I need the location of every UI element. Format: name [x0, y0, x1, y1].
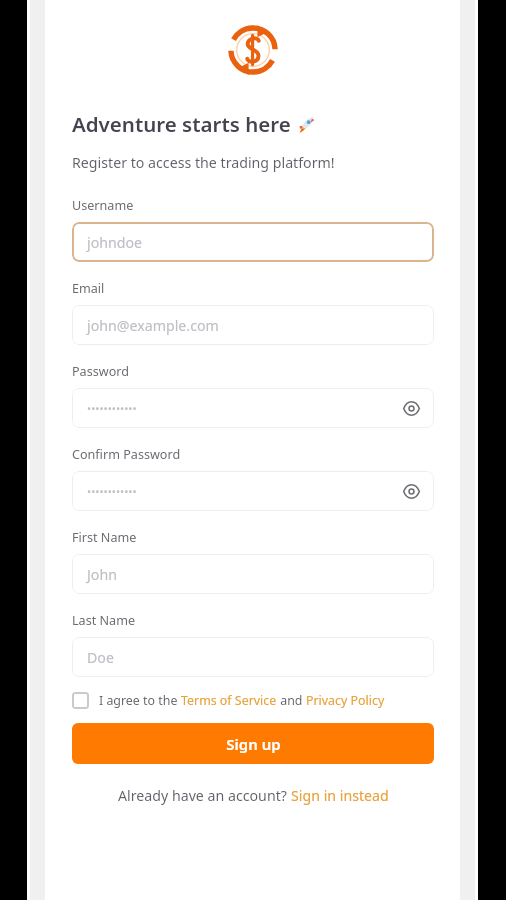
staticText: johndoe [87, 233, 143, 252]
staticText: •••••••••••• [87, 484, 137, 499]
staticText: Last Name [72, 612, 136, 629]
button[interactable]: Show password [400, 480, 422, 502]
staticText: Register to access the trading platform! [72, 153, 335, 172]
staticText: Sign up [226, 734, 281, 754]
staticText: Confirm Password [72, 446, 181, 463]
staticText: I agree to the [99, 692, 181, 709]
staticText: Privacy Policy [306, 692, 385, 709]
staticText: Sign in instead [291, 786, 389, 805]
staticText: Terms of Service [181, 692, 277, 709]
button[interactable]: John [72, 554, 434, 594]
other: Agree to terms [72, 692, 89, 709]
button[interactable]: john@example.com [72, 305, 434, 345]
staticText: First Name [72, 529, 137, 546]
button[interactable]: Agree to terms [72, 692, 434, 709]
staticText: Adventure starts here [72, 110, 297, 138]
button[interactable]: Show password [400, 397, 422, 419]
staticText: •••••••••••• [87, 401, 137, 416]
staticText: Password [72, 363, 129, 380]
button[interactable]: •••••••••••• [72, 388, 434, 428]
staticText: john@example.com [87, 316, 219, 335]
staticText: and [277, 692, 306, 709]
button[interactable]: johndoe [72, 222, 434, 262]
staticText: Email [72, 280, 105, 297]
button[interactable]: Sign in instead [291, 786, 389, 805]
button[interactable]: Sign up [72, 723, 434, 764]
staticText: Already have an account? [118, 786, 291, 805]
button[interactable]: Doe [72, 637, 434, 677]
staticText: John [87, 565, 117, 584]
staticText: Username [72, 197, 134, 214]
staticText: Doe [87, 648, 114, 667]
button[interactable]: •••••••••••• [72, 471, 434, 511]
